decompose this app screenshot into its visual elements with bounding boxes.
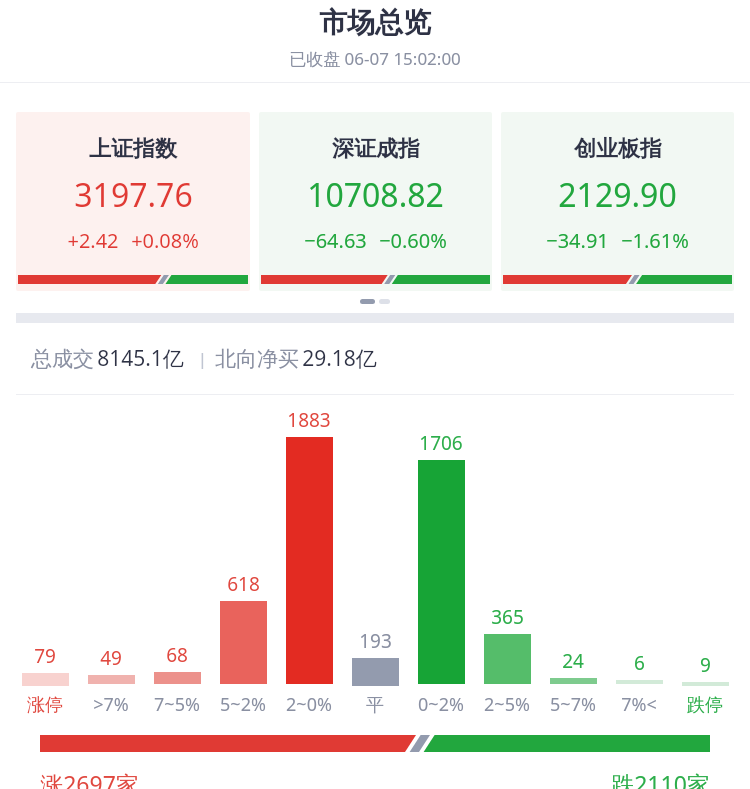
button[interactable]: 193 [342, 395, 408, 725]
button[interactable]: 49 [78, 395, 144, 725]
staticText: 上证指数 [89, 135, 177, 163]
staticText: 1883 [287, 407, 331, 433]
staticText: 49 [100, 645, 122, 671]
staticText: 9 [700, 652, 711, 678]
staticText: 2129.90 [558, 173, 677, 217]
staticText: 5~7% [550, 692, 596, 717]
staticText: 24 [562, 648, 584, 674]
staticText: 2~5% [484, 692, 530, 717]
staticText: 68 [166, 642, 188, 668]
staticText: 3197.76 [74, 173, 193, 217]
button[interactable]: 总成交 [0, 344, 750, 373]
staticText: −1.61% [621, 227, 689, 254]
staticText: 79 [34, 643, 56, 669]
staticText: 2~0% [286, 692, 332, 717]
staticText: 平 [366, 694, 384, 717]
staticText: 市场总览 [319, 5, 431, 40]
staticText: 7~5% [154, 692, 200, 717]
staticText: 7%< [621, 692, 657, 717]
staticText: 1706 [419, 430, 463, 456]
staticText: 10708.82 [307, 173, 444, 217]
button[interactable]: 上证指数 [16, 112, 250, 291]
staticText: −34.91 [546, 227, 609, 254]
button[interactable]: 深证成指 [259, 112, 492, 291]
staticText: +0.08% [131, 227, 199, 254]
staticText: 365 [491, 604, 524, 630]
staticText: 跌2110家 [611, 768, 710, 789]
button[interactable]: 1883 [276, 395, 342, 725]
button[interactable]: 79 [12, 395, 78, 725]
staticText: | [184, 347, 212, 370]
staticText: 618 [227, 571, 260, 597]
button[interactable]: 9 [672, 395, 738, 725]
button[interactable]: 创业板指 [501, 112, 734, 291]
staticText: 北向净买 [212, 344, 302, 373]
staticText: 6 [634, 650, 645, 676]
button[interactable]: 24 [540, 395, 606, 725]
button[interactable]: 618 [210, 395, 276, 725]
button[interactable]: 1706 [408, 395, 474, 725]
staticText: >7% [93, 692, 129, 717]
button[interactable]: 6 [606, 395, 672, 725]
staticText: 跌停 [687, 694, 723, 717]
button[interactable]: 68 [144, 395, 210, 725]
staticText: −0.60% [379, 227, 447, 254]
staticText: 5~2% [220, 692, 266, 717]
staticText: 193 [359, 628, 392, 654]
button[interactable]: 365 [474, 395, 540, 725]
staticText: 总成交 [28, 344, 97, 373]
staticText: 0~2% [418, 692, 464, 717]
staticText: +2.42 [67, 227, 119, 254]
staticText: 已收盘 06-07 15:02:00 [289, 47, 461, 70]
staticText: 29.18亿 [302, 344, 377, 373]
staticText: 深证成指 [332, 135, 420, 163]
staticText: 创业板指 [574, 135, 662, 163]
staticText: 涨2697家 [40, 768, 139, 789]
staticText: 涨停 [27, 694, 63, 717]
staticText: 8145.1亿 [97, 344, 184, 373]
staticText: −64.63 [304, 227, 367, 254]
